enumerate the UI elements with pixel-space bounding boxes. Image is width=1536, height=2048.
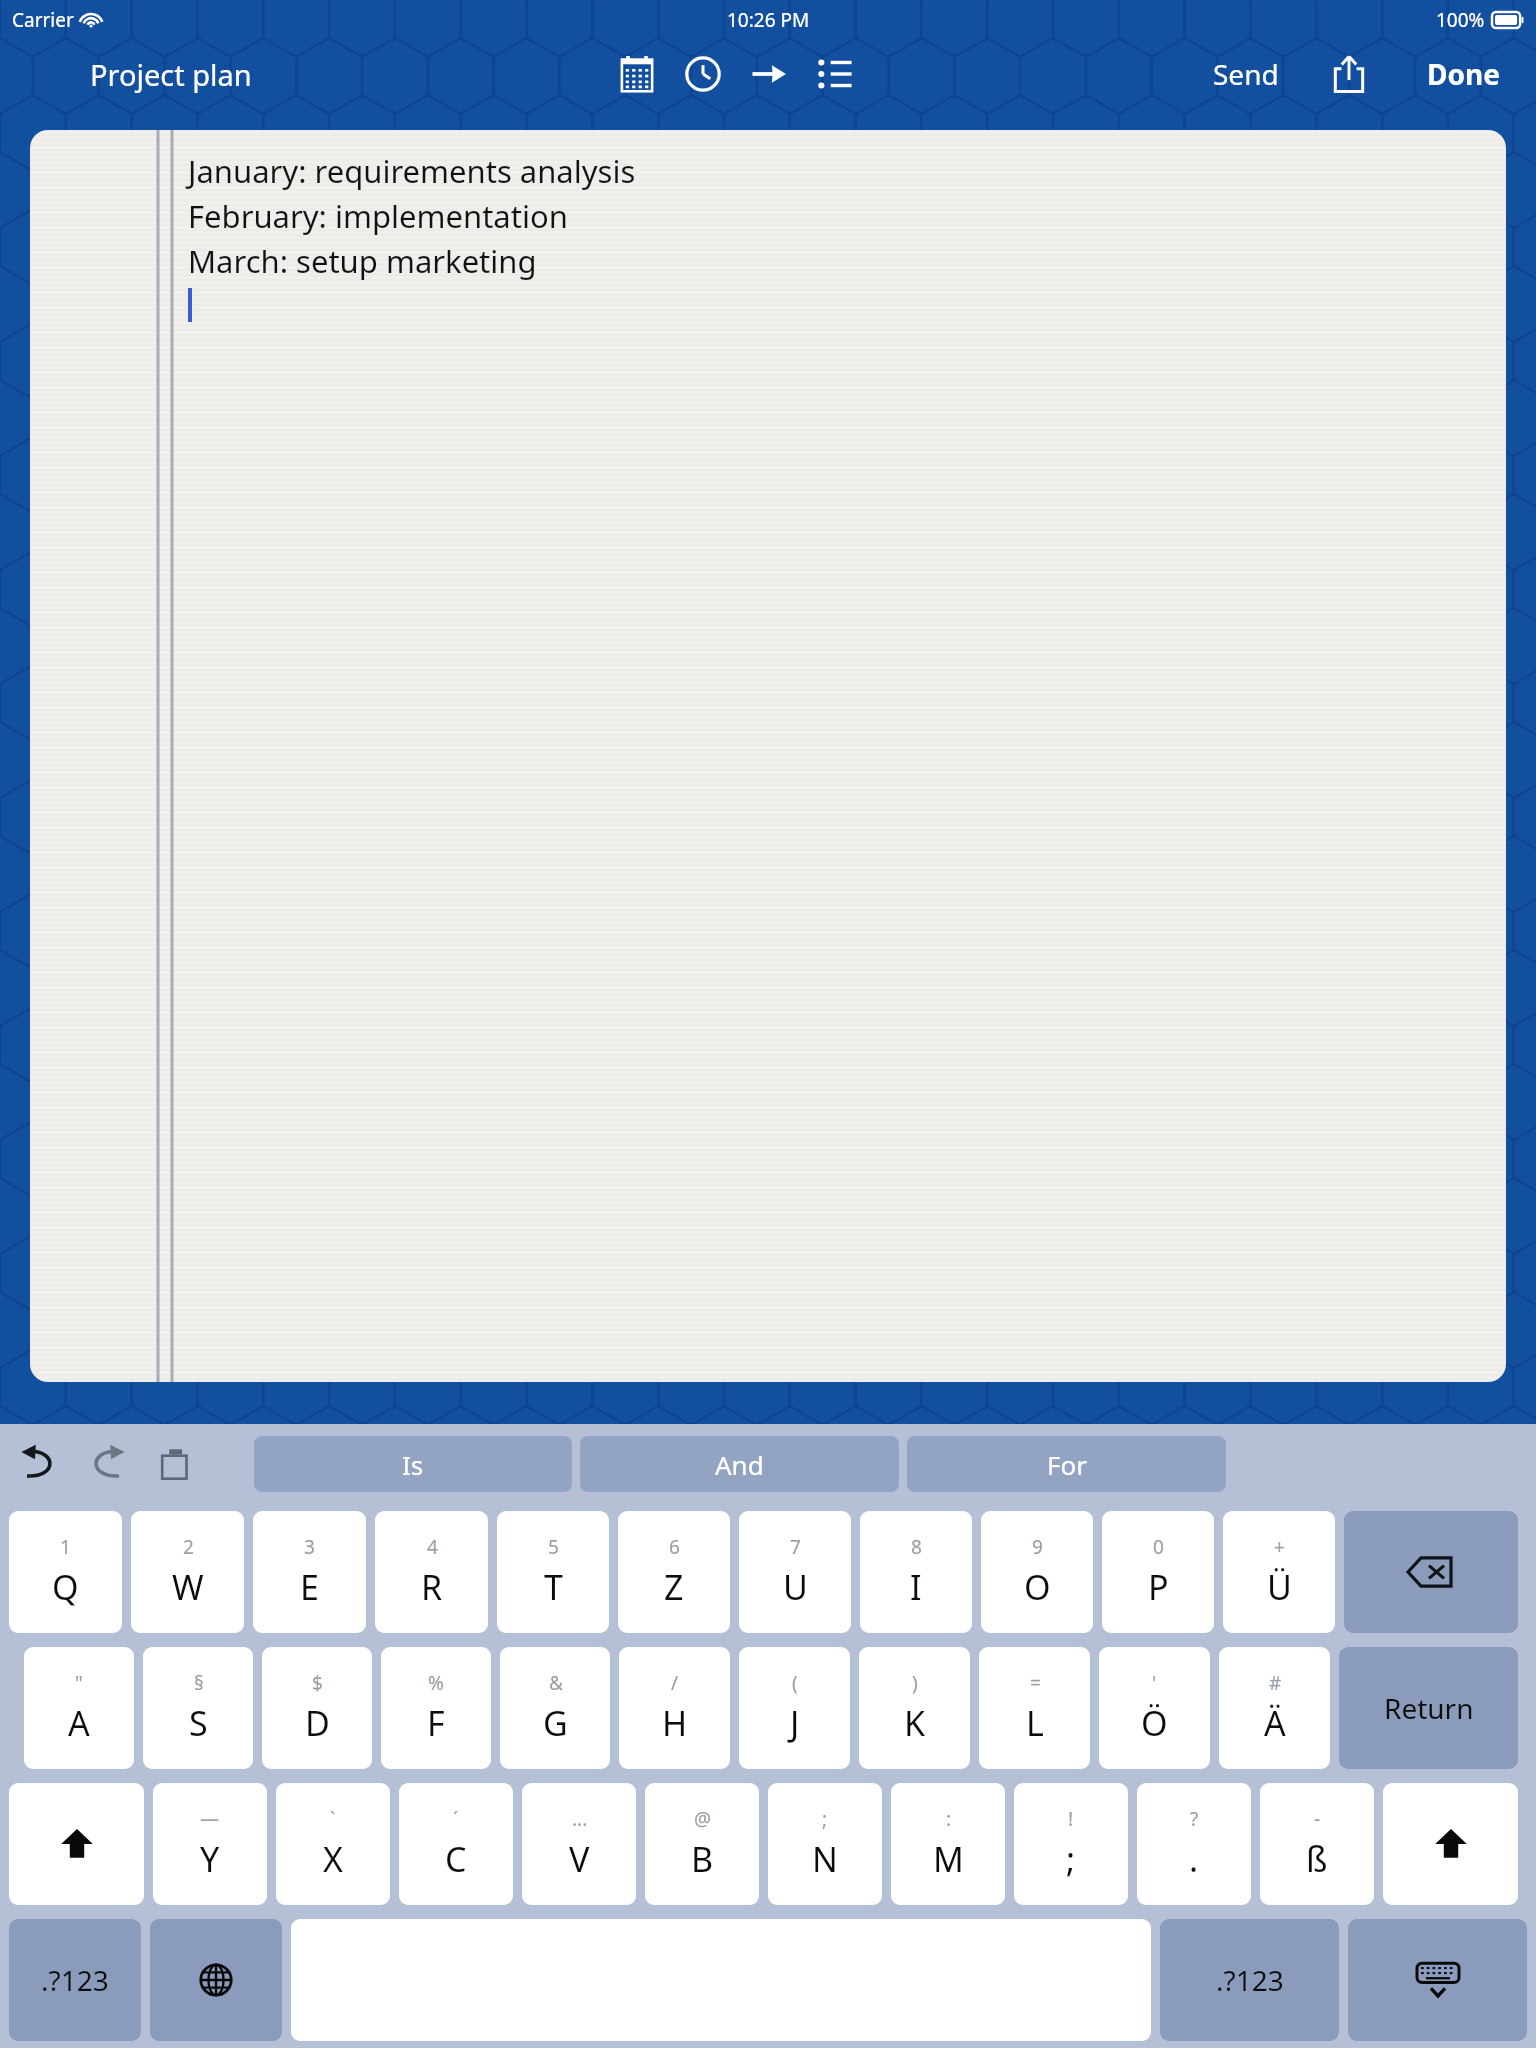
button[interactable]: Change keyboard language bbox=[150, 1919, 282, 2041]
button[interactable]: 3 bbox=[253, 1511, 366, 1633]
staticText: S bbox=[189, 1700, 208, 1746]
button[interactable]: Indent bbox=[746, 51, 792, 97]
staticText: . bbox=[1189, 1836, 1199, 1882]
button[interactable]: And bbox=[580, 1436, 899, 1492]
button[interactable]: 5 bbox=[497, 1511, 609, 1633]
staticText: P bbox=[1148, 1564, 1169, 1610]
button[interactable]: / bbox=[619, 1647, 730, 1769]
staticText: .?123 bbox=[41, 1961, 109, 1999]
button[interactable]: 9 bbox=[981, 1511, 1093, 1633]
staticText: ; bbox=[1066, 1836, 1076, 1882]
button[interactable]: Shift bbox=[9, 1783, 144, 1905]
button[interactable]: Insert date bbox=[614, 51, 660, 97]
staticText: Done bbox=[1427, 55, 1500, 93]
button[interactable]: % bbox=[381, 1647, 491, 1769]
button[interactable]: For bbox=[907, 1436, 1226, 1492]
staticText: U bbox=[783, 1564, 808, 1610]
staticText: M bbox=[933, 1836, 964, 1882]
button[interactable]: Redo bbox=[78, 1435, 136, 1493]
button[interactable]: 4 bbox=[375, 1511, 488, 1633]
button[interactable]: Send bbox=[1203, 49, 1289, 99]
staticText: R bbox=[421, 1564, 443, 1610]
staticText: February: implementation bbox=[188, 195, 568, 237]
button[interactable]: 0 bbox=[1102, 1511, 1214, 1633]
staticText: 1 bbox=[60, 1534, 71, 1560]
staticText: ' bbox=[1152, 1670, 1157, 1696]
button[interactable]: - bbox=[1260, 1783, 1374, 1905]
button[interactable]: 2 bbox=[131, 1511, 244, 1633]
staticText: .?123 bbox=[1216, 1961, 1284, 1999]
staticText: + bbox=[1274, 1534, 1285, 1560]
button[interactable]: Return bbox=[1339, 1647, 1518, 1769]
button[interactable]: " bbox=[24, 1647, 134, 1769]
button[interactable]: .?123 bbox=[1160, 1919, 1339, 2041]
staticText: E bbox=[300, 1564, 319, 1610]
staticText: W bbox=[172, 1564, 204, 1610]
button[interactable]: January: requirements analysis bbox=[30, 130, 1506, 1382]
button[interactable]: ? bbox=[1137, 1783, 1251, 1905]
staticText: For bbox=[1047, 1447, 1087, 1482]
button[interactable]: $ bbox=[262, 1647, 372, 1769]
staticText: ´ bbox=[453, 1806, 459, 1832]
staticText: Carrier bbox=[12, 7, 74, 33]
button[interactable]: & bbox=[500, 1647, 610, 1769]
button[interactable]: Share bbox=[1325, 50, 1373, 98]
button[interactable]: ´ bbox=[399, 1783, 513, 1905]
staticText: & bbox=[549, 1670, 563, 1696]
staticText: 7 bbox=[790, 1534, 801, 1560]
button[interactable]: .?123 bbox=[9, 1919, 141, 2041]
button[interactable]: ... bbox=[522, 1783, 636, 1905]
staticText: ! bbox=[1068, 1806, 1074, 1832]
staticText: 3 bbox=[304, 1534, 315, 1560]
button[interactable]: : bbox=[891, 1783, 1005, 1905]
button[interactable]: — bbox=[153, 1783, 267, 1905]
button[interactable]: Shift bbox=[1383, 1783, 1518, 1905]
staticText: / bbox=[671, 1670, 679, 1696]
staticText: Ü bbox=[1267, 1564, 1292, 1610]
button[interactable]: ' bbox=[1099, 1647, 1210, 1769]
button[interactable]: Project plan bbox=[86, 51, 256, 98]
staticText: 2 bbox=[183, 1534, 194, 1560]
button[interactable]: Done bbox=[1417, 49, 1510, 99]
staticText: Z bbox=[664, 1564, 684, 1610]
button[interactable]: Paste bbox=[146, 1435, 204, 1493]
staticText: N bbox=[812, 1836, 838, 1882]
button[interactable]: ; bbox=[768, 1783, 882, 1905]
button[interactable]: 1 bbox=[9, 1511, 122, 1633]
button[interactable]: Backspace bbox=[1344, 1511, 1518, 1633]
button[interactable]: = bbox=[979, 1647, 1090, 1769]
button[interactable]: # bbox=[1219, 1647, 1330, 1769]
button[interactable]: Insert time bbox=[680, 51, 726, 97]
button[interactable]: ( bbox=[739, 1647, 850, 1769]
staticText: % bbox=[428, 1670, 444, 1696]
staticText: January: requirements analysis bbox=[188, 150, 636, 192]
button[interactable]: Undo bbox=[10, 1435, 68, 1493]
button[interactable]: ` bbox=[276, 1783, 390, 1905]
staticText: 4 bbox=[427, 1534, 438, 1560]
staticText: § bbox=[194, 1670, 204, 1696]
staticText: And bbox=[715, 1447, 764, 1482]
button[interactable]: Hide keyboard bbox=[1348, 1919, 1527, 2041]
staticText: ? bbox=[1190, 1806, 1199, 1832]
staticText: B bbox=[691, 1836, 714, 1882]
button[interactable]: @ bbox=[645, 1783, 759, 1905]
button[interactable]: 8 bbox=[860, 1511, 972, 1633]
staticText: L bbox=[1026, 1700, 1044, 1746]
button[interactable]: 6 bbox=[618, 1511, 730, 1633]
staticText: Is bbox=[402, 1447, 424, 1482]
button[interactable]: Is bbox=[254, 1436, 572, 1492]
button[interactable]: 7 bbox=[739, 1511, 851, 1633]
button[interactable]: ) bbox=[859, 1647, 970, 1769]
staticText: 0 bbox=[1153, 1534, 1164, 1560]
staticText: 9 bbox=[1032, 1534, 1043, 1560]
staticText: I bbox=[910, 1564, 922, 1610]
staticText: Q bbox=[52, 1564, 79, 1610]
staticText: March: setup marketing bbox=[188, 240, 537, 282]
staticText: 10:26 PM bbox=[727, 7, 810, 33]
button[interactable]: + bbox=[1223, 1511, 1335, 1633]
button[interactable]: § bbox=[143, 1647, 253, 1769]
staticText: Ä bbox=[1264, 1700, 1286, 1746]
button[interactable]: Bullet list bbox=[812, 51, 858, 97]
button[interactable]: ! bbox=[1014, 1783, 1128, 1905]
